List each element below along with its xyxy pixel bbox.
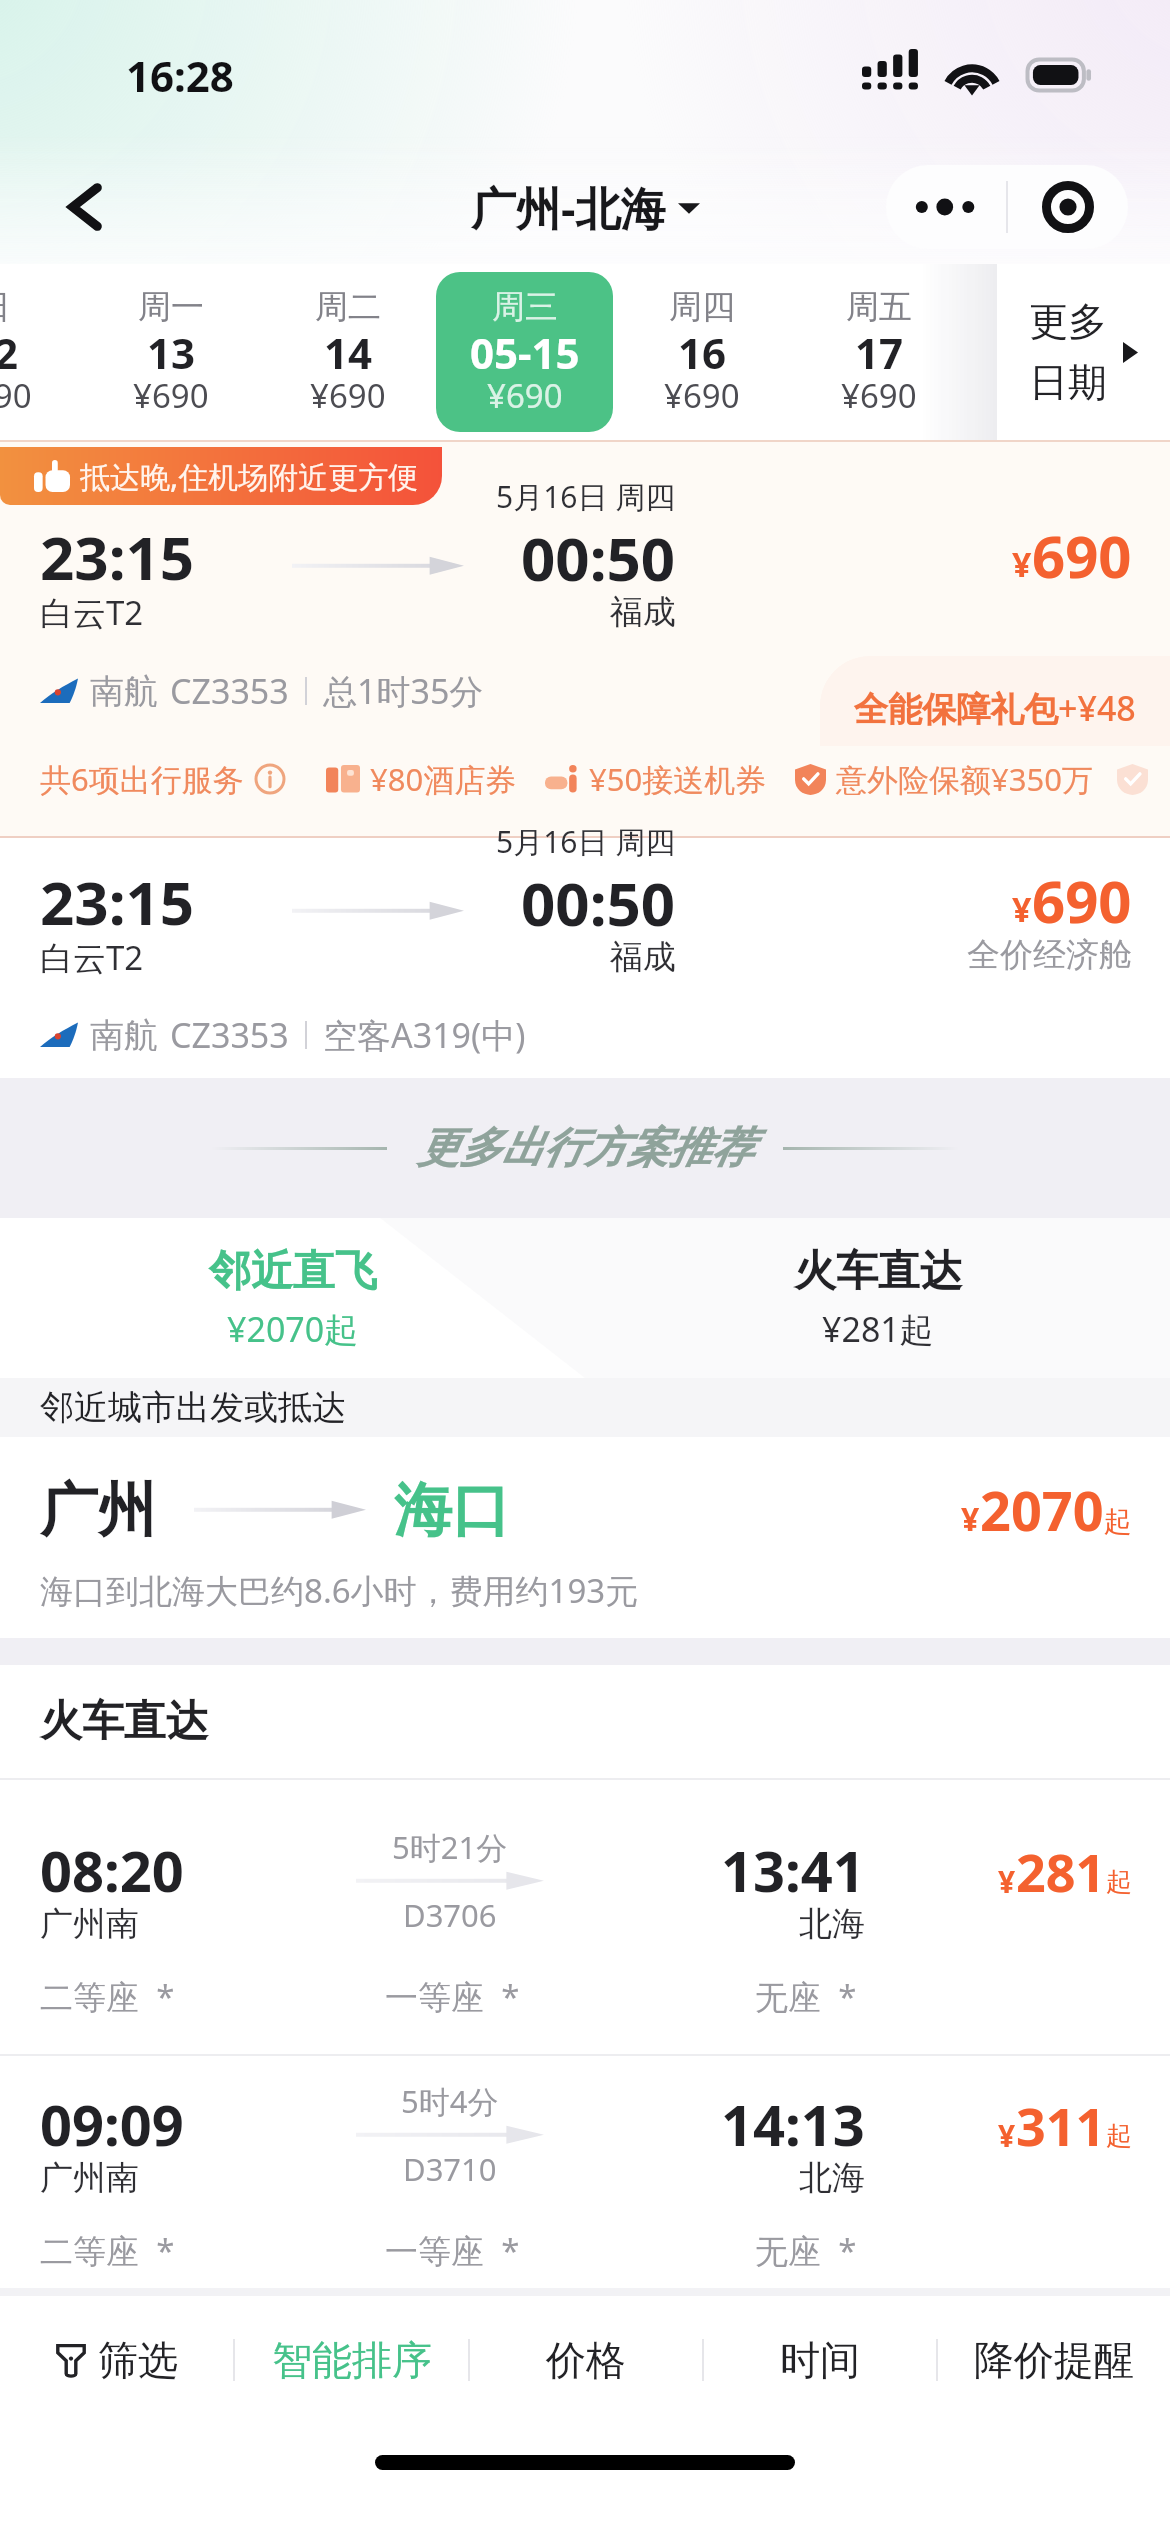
staticText: 5时4分	[401, 2080, 499, 2122]
staticText: ¥50接送机券	[589, 758, 767, 800]
staticText: 全价经济舱	[967, 934, 1132, 976]
staticText: 00:50	[521, 862, 676, 944]
staticText: 23:15	[40, 861, 195, 943]
button[interactable]: 智能排序	[235, 2296, 468, 2424]
staticText: 筛选	[98, 2335, 178, 2385]
staticText: 广州南	[40, 2157, 139, 2199]
button[interactable]: 邻近直飞	[0, 1218, 585, 1378]
button[interactable]: 广州-北海	[471, 177, 700, 238]
staticText: 一等座 *	[385, 1974, 520, 2019]
staticText: 无座 *	[755, 2228, 857, 2273]
staticText: 5月16日 周四	[496, 821, 676, 862]
other: Close mini program	[1008, 165, 1128, 249]
staticText: 一等座 *	[385, 2228, 520, 2273]
staticText: 更多出行方案推荐	[417, 1122, 753, 1175]
staticText: 意外险保额¥350万	[836, 758, 1093, 800]
button[interactable]: More	[886, 165, 1128, 249]
button[interactable]: 价格	[470, 2296, 702, 2424]
staticText: 08:20	[40, 1832, 184, 1908]
staticText: 12	[0, 324, 19, 381]
staticText: ¥80酒店券	[370, 758, 517, 800]
staticText: 白云T2	[40, 935, 144, 980]
staticText: 降价提醒	[974, 2335, 1134, 2385]
staticText: 南航	[90, 1014, 158, 1057]
staticText: ¥	[998, 1861, 1016, 1902]
staticText: D3710	[403, 2148, 497, 2190]
button[interactable]: 抵达晚,住机场附近更方便	[0, 440, 1170, 838]
staticText: 总1时35分	[323, 668, 484, 714]
button[interactable]: 周一	[82, 272, 259, 432]
staticText: 14	[324, 324, 373, 381]
staticText: ¥2070起	[227, 1306, 359, 1352]
staticText: 广州-北海	[471, 177, 666, 238]
staticText: 5时21分	[392, 1826, 508, 1868]
button[interactable]: 火车直达	[585, 1218, 1170, 1378]
staticText: 00:50	[521, 517, 676, 599]
staticText: 南航	[90, 670, 158, 713]
staticText: 起	[1106, 1866, 1132, 1899]
staticText: 16:28	[126, 47, 234, 104]
staticText: 全能保障礼包	[854, 688, 1058, 731]
staticText: 无座 *	[755, 1974, 857, 2019]
staticText: ¥690	[133, 373, 209, 418]
button[interactable]: 全能保障礼包	[820, 656, 1170, 746]
staticText: 5月16日 周四	[496, 476, 676, 517]
staticText: 白云T2	[40, 590, 144, 635]
button[interactable]: 时间	[704, 2296, 936, 2424]
staticText: 火车直达	[794, 1245, 962, 1298]
button[interactable]: 筛选	[0, 2296, 233, 2424]
staticText: ¥690	[0, 373, 32, 418]
staticText: 北海	[799, 1903, 865, 1945]
staticText: 邻近直飞	[209, 1245, 377, 1298]
staticText: 北海	[799, 2157, 865, 2199]
button[interactable]: 更多	[997, 264, 1170, 440]
staticText: 2070	[980, 1473, 1104, 1547]
staticText: +¥48	[1058, 685, 1136, 731]
staticText: 邻近城市出发或抵达	[40, 1386, 346, 1429]
button[interactable]: 23:15	[0, 838, 1170, 1078]
staticText: ¥690	[487, 373, 563, 418]
button[interactable]: 日	[0, 272, 82, 432]
button[interactable]: 降价提醒	[938, 2296, 1170, 2424]
staticText: ¥281起	[822, 1306, 934, 1352]
staticText: 共6项出行服务	[40, 758, 244, 800]
button[interactable]: 周四	[613, 272, 790, 432]
staticText: 起	[1104, 1504, 1132, 1539]
staticText: 周二	[315, 286, 381, 328]
staticText: ¥690	[841, 373, 917, 418]
staticText: 13	[147, 324, 196, 381]
staticText: 14:13	[721, 2086, 865, 2162]
staticText: D3706	[403, 1894, 497, 1936]
staticText: ¥	[1012, 541, 1032, 587]
staticText: 海口	[394, 1474, 510, 1547]
staticText: 海口到北海大巴约8.6小时，费用约193元	[40, 1568, 639, 1613]
staticText: ¥	[961, 1497, 980, 1541]
staticText: 福成	[610, 936, 676, 978]
staticText: 价格	[546, 2335, 626, 2385]
staticText: 周一	[138, 286, 204, 328]
staticText: 二等座 *	[40, 1974, 175, 2019]
button[interactable]: 08:20	[0, 1780, 1170, 2054]
staticText: ¥690	[310, 373, 386, 418]
button[interactable]: 周二	[259, 272, 436, 432]
staticText: 690	[1032, 516, 1132, 595]
button[interactable]: Back	[42, 164, 128, 250]
staticText: 09:09	[40, 2086, 184, 2162]
staticText: 周五	[846, 286, 912, 328]
button[interactable]: 周三	[436, 272, 613, 432]
staticText: 周四	[669, 286, 735, 328]
other: More	[886, 165, 1006, 249]
staticText: 福成	[610, 591, 676, 633]
button[interactable]: 周五	[790, 272, 967, 432]
staticText: 广州南	[40, 1903, 139, 1945]
staticText: 日	[0, 286, 11, 328]
staticText: 690	[1032, 861, 1132, 940]
staticText: 17	[855, 324, 904, 381]
staticText: 时间	[780, 2335, 860, 2385]
button[interactable]: 09:09	[0, 2056, 1170, 2288]
button[interactable]: 广州	[0, 1437, 1170, 1638]
staticText: 16	[678, 324, 727, 381]
staticText: ¥	[998, 2115, 1016, 2156]
staticText: 火车直达	[40, 1695, 208, 1748]
staticText: 05-15	[470, 324, 580, 381]
